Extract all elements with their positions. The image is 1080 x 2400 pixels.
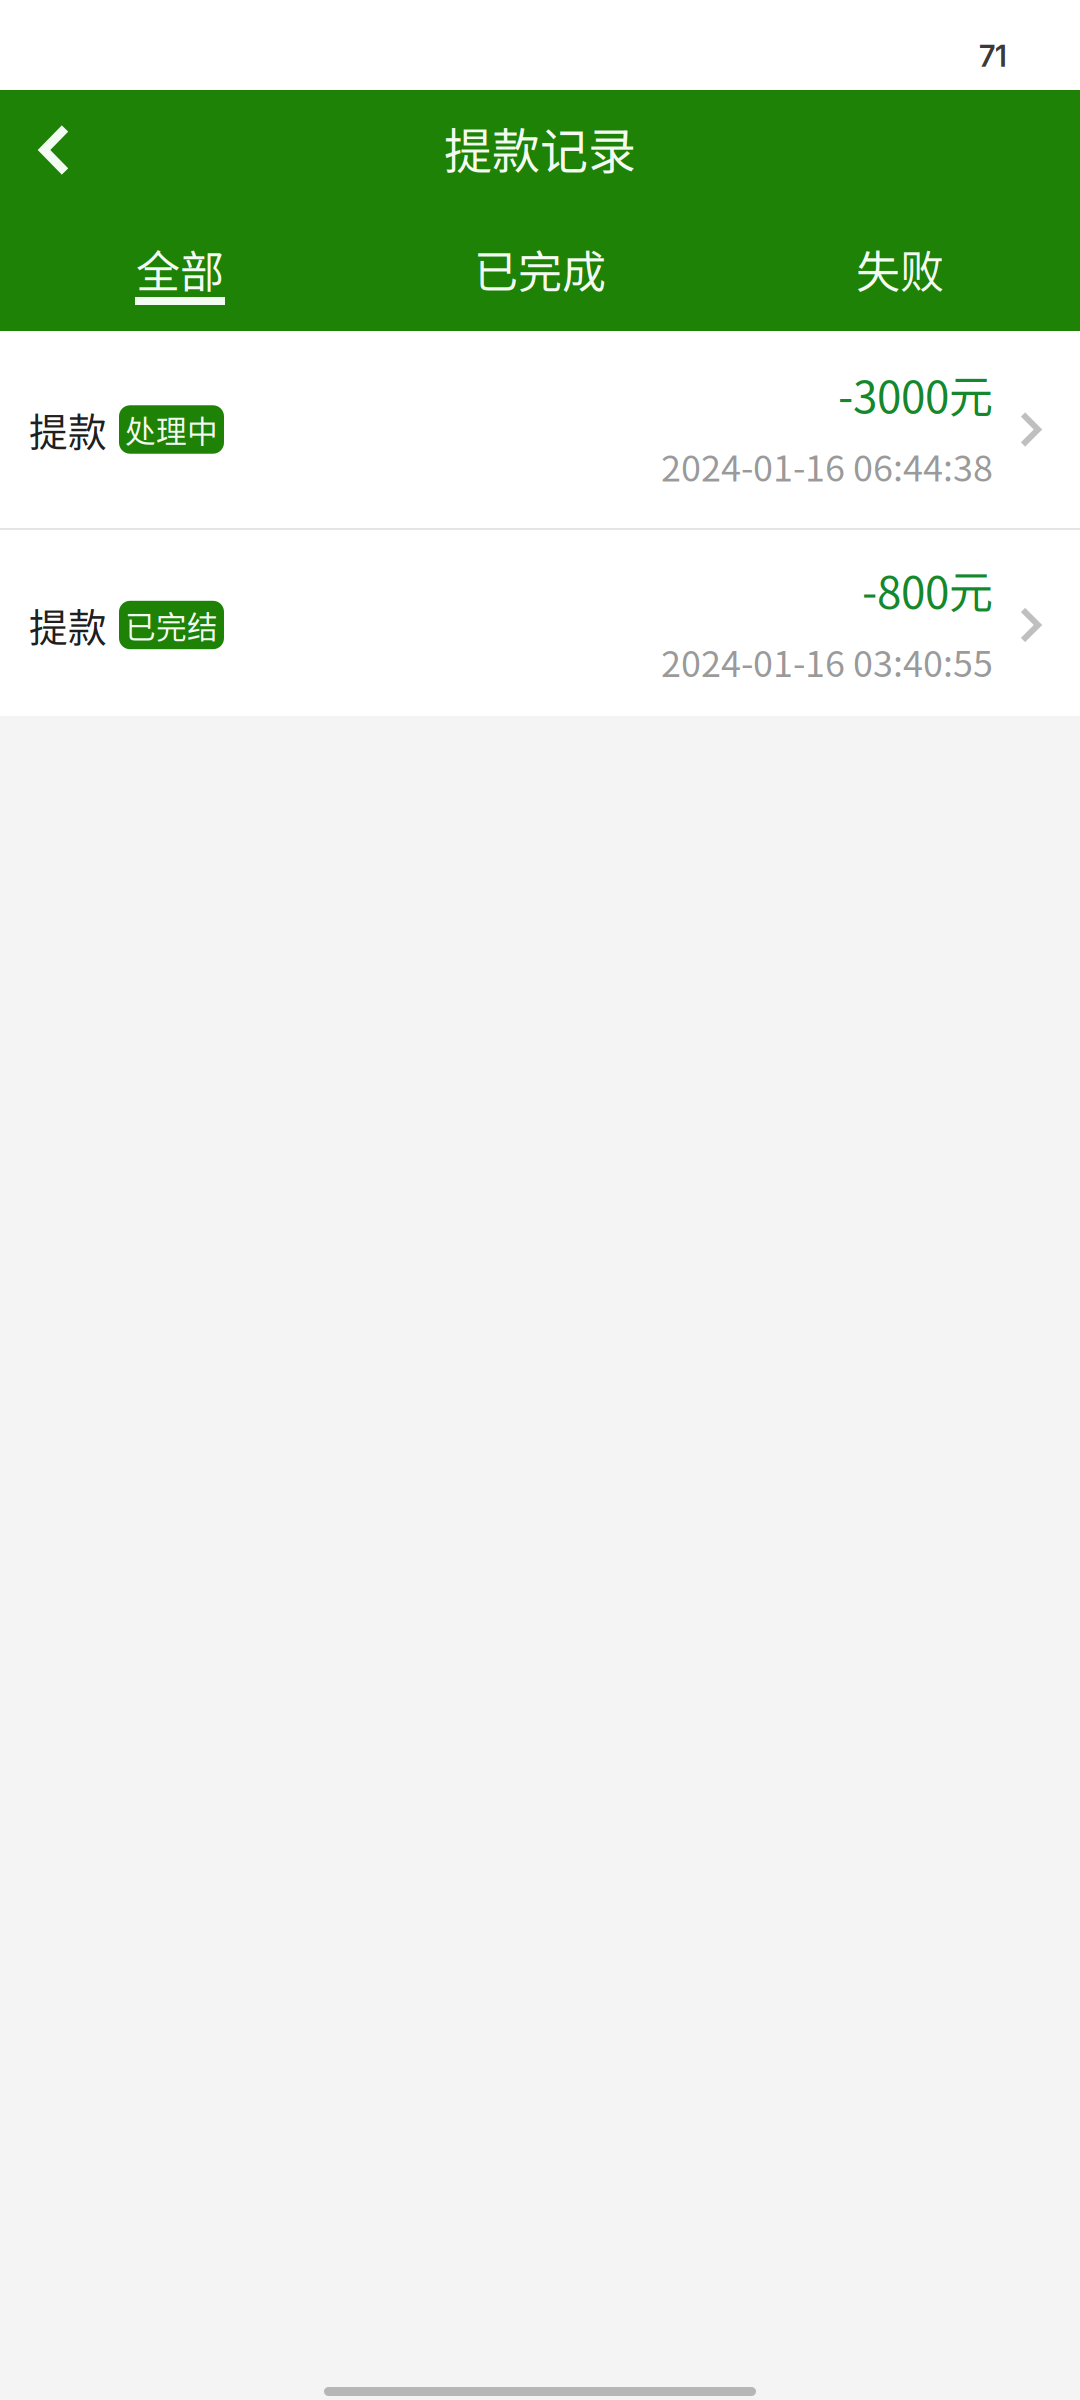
staticText: 已完结: [125, 603, 218, 647]
button[interactable]: 全部: [0, 205, 360, 331]
staticText: 失败: [856, 237, 944, 301]
staticText: 提款记录: [444, 113, 636, 182]
staticText: 已完成: [474, 237, 606, 301]
button[interactable]: 提款: [0, 331, 1080, 528]
button[interactable]: Back: [0, 90, 94, 205]
staticText: 提款: [29, 401, 107, 457]
staticText: 全部: [136, 237, 224, 301]
staticText: 处理中: [125, 407, 218, 452]
staticText: 71: [979, 38, 1007, 74]
staticText: 2024-01-16 06:44:38: [661, 440, 993, 492]
staticText: -800元: [862, 558, 993, 621]
button[interactable]: 提款: [0, 530, 1080, 716]
staticText: 提款: [29, 597, 107, 653]
staticText: 2024-01-16 03:40:55: [661, 635, 993, 687]
staticText: -3000元: [838, 362, 993, 426]
button[interactable]: 失败: [720, 205, 1080, 331]
button[interactable]: 已完成: [360, 205, 720, 331]
